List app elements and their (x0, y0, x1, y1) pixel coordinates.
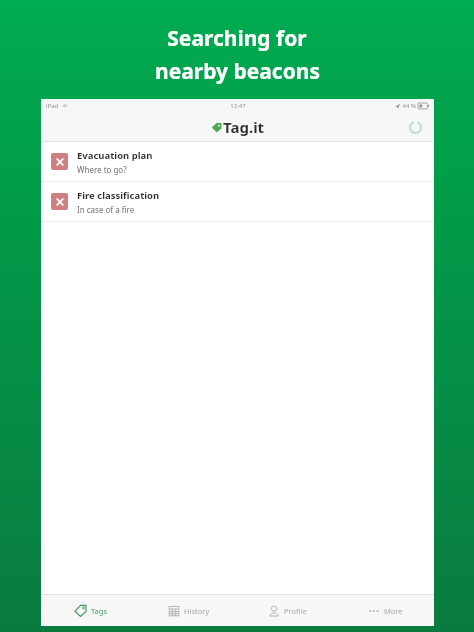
staticText: History (184, 606, 210, 616)
staticText: Profile (284, 606, 307, 616)
staticText: Where to go? (77, 164, 127, 175)
staticText: More (384, 606, 403, 616)
button[interactable]: History (140, 595, 238, 626)
staticText: Evacuation plan (77, 149, 153, 162)
button[interactable]: More (336, 595, 434, 626)
button[interactable]: Fire classification (41, 182, 434, 221)
staticText: Tag.it (223, 117, 265, 137)
other: Loading (406, 118, 424, 136)
staticText: nearby beacons (155, 57, 320, 86)
staticText: 12:47 (230, 102, 246, 110)
staticText: iPad (46, 102, 59, 110)
button[interactable]: Profile (238, 595, 336, 626)
staticText: Searching for (167, 24, 307, 53)
staticText: Tags (91, 606, 107, 616)
staticText: In case of a fire (77, 204, 135, 215)
button[interactable]: Evacuation plan (41, 142, 434, 181)
staticText: Fire classification (77, 189, 160, 202)
staticText: 44 % (402, 102, 416, 110)
button[interactable]: Tags (41, 595, 140, 626)
